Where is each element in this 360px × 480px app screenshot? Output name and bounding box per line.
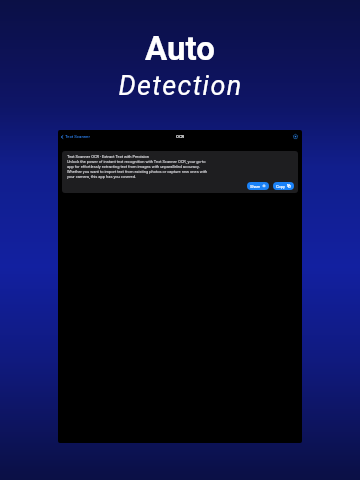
button[interactable]: Share [247, 182, 269, 190]
staticText: OCR [176, 134, 185, 139]
staticText: Auto [145, 29, 215, 68]
staticText: Detection [118, 70, 243, 102]
staticText: Copy [276, 184, 286, 189]
staticText: Unlock the power of instant text recogni… [67, 159, 213, 179]
button[interactable]: Text Scanner [58, 132, 93, 141]
button[interactable]: Save [292, 133, 299, 140]
staticText: Share [250, 184, 261, 189]
button[interactable]: Copy [273, 182, 294, 190]
staticText: Text Scanner [65, 134, 90, 139]
staticText: Text Scanner OCR - Extract Text with Pre… [67, 154, 150, 159]
